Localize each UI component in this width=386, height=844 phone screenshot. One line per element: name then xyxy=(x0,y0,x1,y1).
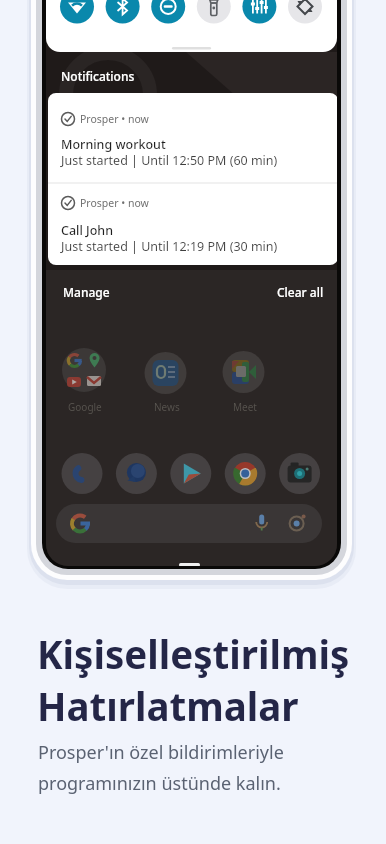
staticText: Just started | Until 12:50 PM (60 min) xyxy=(61,152,278,169)
staticText: Prosper • now xyxy=(80,112,149,126)
staticText: News xyxy=(154,400,180,414)
button[interactable]: Clear all xyxy=(277,284,324,300)
staticText: Google xyxy=(68,400,102,414)
staticText: Call John xyxy=(61,222,114,239)
staticText: Prosper'ın özel bildirimleriyle programı… xyxy=(38,740,284,795)
staticText: Meet xyxy=(233,400,257,414)
staticText: Just started | Until 12:19 PM (30 min) xyxy=(61,238,278,255)
staticText: Morning workout xyxy=(61,136,166,153)
staticText: Kişiselleştirilmiş Hatırlatmalar xyxy=(37,628,350,732)
staticText: Prosper • now xyxy=(80,196,149,210)
staticText: Notifications xyxy=(61,68,135,84)
button[interactable]: Prosper • now xyxy=(48,93,337,265)
button[interactable]: Manage xyxy=(63,284,110,300)
button[interactable] xyxy=(46,0,337,52)
